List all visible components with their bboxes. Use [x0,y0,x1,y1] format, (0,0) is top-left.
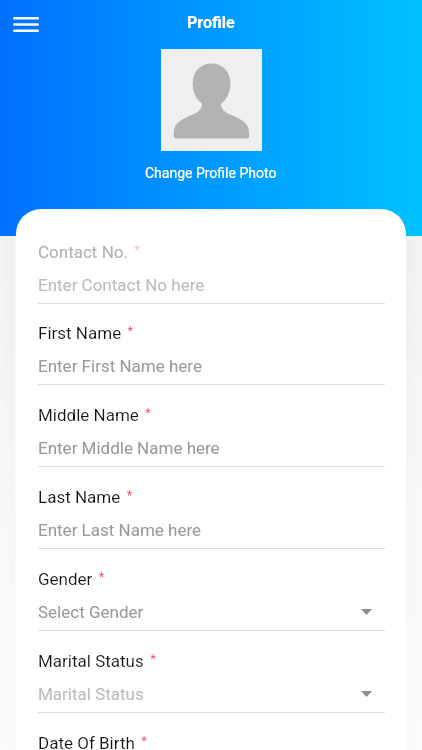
staticText: Change Profile Photo [145,165,277,181]
staticText: Profile [187,13,235,32]
staticText: Last Name * [38,487,133,507]
button[interactable]: Marital Status * [38,651,385,733]
staticText: Gender * [38,569,105,589]
button[interactable]: Middle Name * [38,405,385,487]
staticText: Middle Name * [38,405,151,425]
staticText: Marital Status * [38,651,156,671]
staticText: Marital Status [38,684,374,704]
button[interactable]: Menu [5,3,45,43]
staticText: Contact No. * [38,242,140,262]
staticText: Enter Contact No here [38,275,385,295]
staticText: Date Of Birth * [38,733,147,750]
button[interactable]: Profile photo [161,49,262,151]
staticText: First Name * [38,323,134,343]
staticText: Enter First Name here [38,356,385,376]
staticText: Select Gender [38,602,374,622]
staticText: Enter Last Name here [38,520,385,540]
button[interactable]: Contact No. * [38,242,385,324]
button[interactable]: Gender * [38,569,385,651]
staticText: Enter Middle Name here [38,438,385,458]
other: Open dropdown [361,609,372,615]
button[interactable]: Last Name * [38,487,385,569]
other: Open dropdown [361,691,372,697]
button[interactable]: First Name * [38,323,385,405]
button[interactable]: Change Profile Photo [139,162,283,184]
